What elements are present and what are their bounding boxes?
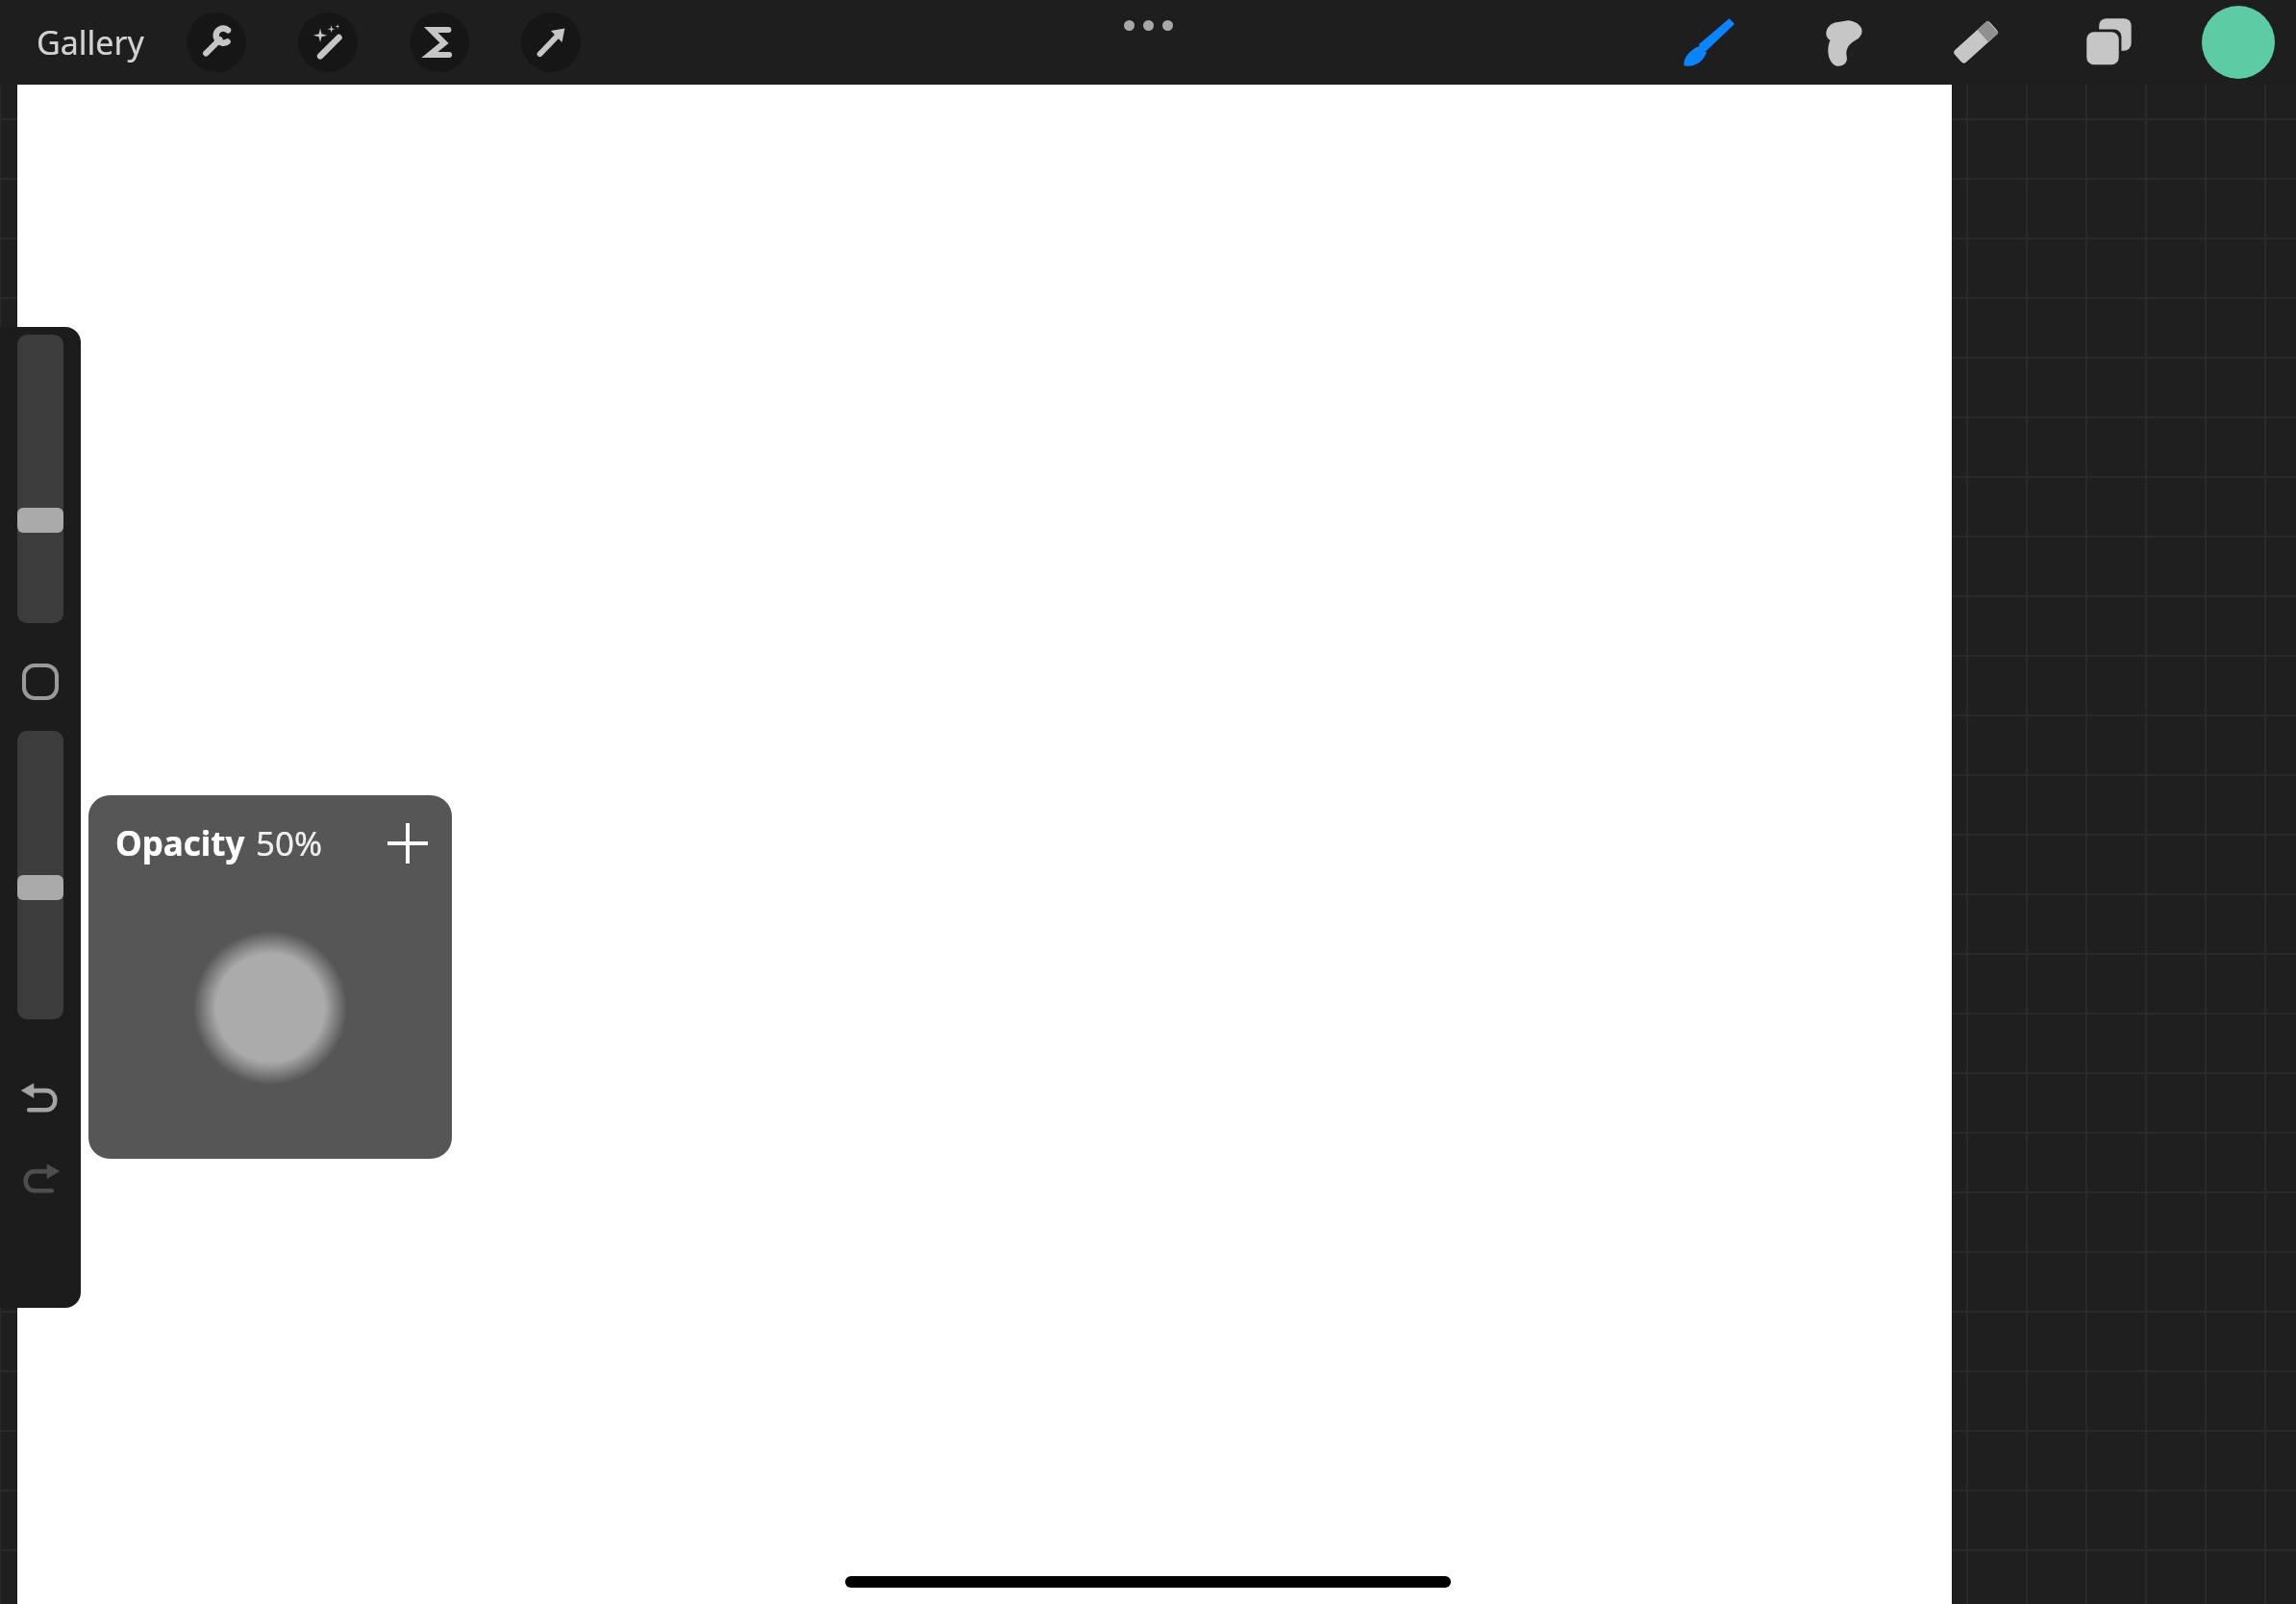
staticText: Opacity [115, 820, 245, 866]
button[interactable]: Paint [1668, 2, 1749, 83]
button[interactable]: Selection [410, 13, 469, 72]
button[interactable]: Transform [521, 13, 581, 72]
button[interactable]: Layers [2069, 2, 2150, 83]
button[interactable]: More options [1114, 11, 1183, 40]
button[interactable]: Undo [10, 1065, 71, 1127]
button[interactable]: Gallery [29, 11, 152, 74]
button[interactable]: Brush size [17, 335, 63, 623]
button[interactable]: Redo [10, 1146, 71, 1208]
staticText: 50% [256, 820, 323, 866]
button[interactable]: Colour [2202, 6, 2275, 79]
button[interactable]: Actions [187, 13, 246, 72]
button[interactable]: Modify [12, 654, 68, 710]
button[interactable]: Erase [1935, 2, 2016, 83]
button[interactable]: Adjustments [298, 13, 358, 72]
button[interactable]: Smudge [1803, 2, 1884, 83]
button[interactable]: Opacity [17, 731, 63, 1019]
button[interactable]: Increase opacity [385, 820, 431, 866]
